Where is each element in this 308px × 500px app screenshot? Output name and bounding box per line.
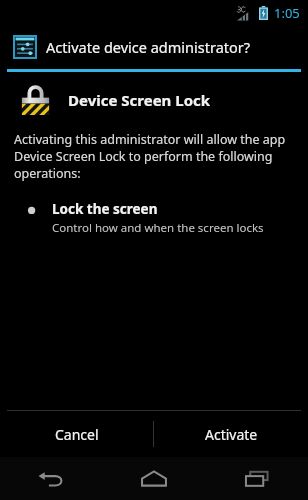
staticText: Device Screen Lock: [68, 90, 211, 110]
staticText: Activate: [205, 425, 258, 444]
button[interactable]: Recent apps: [205, 457, 308, 500]
staticText: Activating this administrator will allow…: [14, 131, 294, 182]
button[interactable]: Home: [102, 457, 205, 500]
button[interactable]: Cancel: [0, 411, 153, 457]
staticText: Activate device administrator?: [46, 37, 251, 57]
staticText: 1:05: [274, 4, 300, 22]
staticText: Cancel: [55, 425, 99, 444]
staticText: Control how and when the screen locks: [52, 220, 264, 236]
staticText: Lock the screen: [52, 200, 158, 218]
button[interactable]: Activate: [154, 411, 308, 457]
button[interactable]: Back: [0, 457, 102, 500]
